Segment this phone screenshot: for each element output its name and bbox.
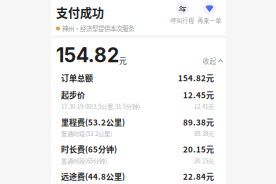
staticText: 再来一单	[197, 16, 221, 24]
staticText: 12.45元	[183, 89, 214, 101]
staticText: 支付成功	[56, 4, 104, 21]
staticText: 89.38元	[194, 129, 214, 138]
staticText: 起步价	[61, 89, 85, 101]
staticText: 20.15元	[194, 156, 214, 165]
staticText: 普通时段(65分钟)	[61, 156, 107, 165]
staticText: 17:30-19:00(3.5公里,31.5分钟)	[61, 102, 140, 111]
staticText: 收起	[202, 56, 216, 65]
staticText: 远途费(44.8公里)	[61, 170, 125, 182]
staticText: 普通时段(53.2公里)	[61, 129, 112, 138]
staticText: 订单总额	[61, 72, 93, 83]
staticText: 154.82元	[178, 72, 214, 83]
staticText: 呼叫行程	[170, 16, 194, 24]
staticText: 12.41元	[194, 102, 214, 111]
staticText: 89.38元	[183, 116, 214, 128]
staticText: 22.84元	[183, 170, 214, 182]
staticText: 154.82	[56, 43, 119, 67]
staticText: 元	[119, 55, 127, 66]
staticText: 里程费(53.2公里)	[61, 116, 125, 128]
staticText: 神州·经济型提供本次服务	[62, 24, 134, 33]
button[interactable]: 收起	[202, 56, 223, 67]
button[interactable]: 再来一单	[196, 2, 223, 24]
button[interactable]: 呼叫行程	[169, 2, 196, 24]
staticText: 时长费(65分钟)	[61, 143, 117, 155]
staticText: 20.15元	[183, 143, 214, 155]
